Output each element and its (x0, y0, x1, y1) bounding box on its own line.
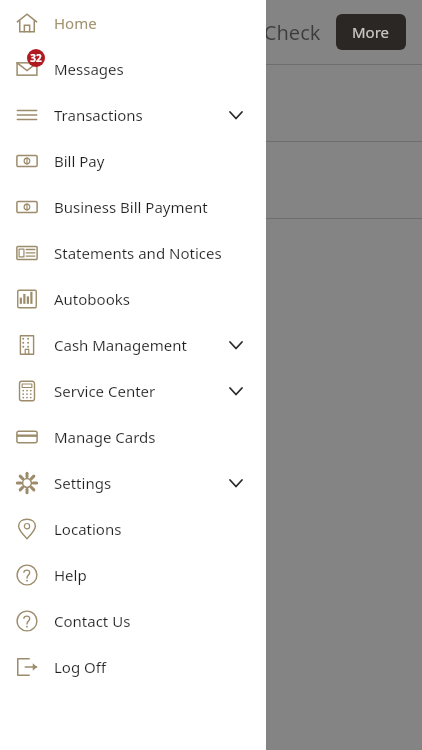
button[interactable]: Settings (0, 460, 266, 506)
staticText: Statements and Notices (54, 243, 266, 263)
staticText: Messages (54, 59, 266, 79)
staticText: Log Off (54, 657, 266, 677)
button[interactable] (0, 65, 422, 141)
button[interactable]: Autobooks (0, 276, 266, 322)
button[interactable]: Help (0, 552, 266, 598)
button[interactable]: Log Off (0, 644, 266, 690)
other: Settings (16, 472, 38, 494)
staticText: Locations (54, 519, 266, 539)
staticText: Settings (54, 473, 224, 493)
button[interactable] (0, 142, 422, 218)
other: Help (16, 564, 38, 586)
other: Help (16, 610, 38, 632)
other: Log Off (16, 656, 38, 678)
staticText: 32 (30, 51, 42, 65)
other: Bill Pay (16, 150, 38, 172)
other: Service Center (16, 380, 38, 402)
other: Manage Cards (16, 426, 38, 448)
staticText: Business Bill Payment (54, 197, 266, 217)
staticText: More (352, 22, 390, 42)
other: Messages (16, 58, 38, 80)
staticText: Cash Management (54, 335, 224, 355)
other: Bill Pay (16, 196, 38, 218)
staticText: Transactions (54, 105, 224, 125)
staticText: Autobooks (54, 289, 266, 309)
button[interactable]: Home (0, 0, 266, 46)
other: Autobooks (16, 288, 38, 310)
other: Cash Management (16, 334, 38, 356)
button[interactable]: Manage Cards (0, 414, 266, 460)
button[interactable]: Messages (0, 46, 266, 92)
button[interactable]: Bill Pay (0, 184, 266, 230)
button[interactable]: Transactions (0, 92, 266, 138)
button[interactable]: Cash Management (0, 322, 266, 368)
staticText: Service Center (54, 381, 224, 401)
other: Transactions (16, 104, 38, 126)
staticText: Home (54, 13, 266, 33)
staticText: Deposit a Check (170, 19, 321, 46)
button[interactable]: Clear (8, 236, 91, 282)
button[interactable]: Statements and Notices (0, 230, 266, 276)
staticText: Clear (30, 248, 69, 270)
other: Locations (16, 518, 38, 540)
staticText: Manage Cards (54, 427, 266, 447)
button[interactable]: Help (0, 598, 266, 644)
other: Statements and Notices (16, 242, 38, 264)
button[interactable]: More (336, 14, 406, 50)
button[interactable]: Service Center (0, 368, 266, 414)
other: Home (16, 12, 38, 34)
staticText: Bill Pay (54, 151, 266, 171)
staticText: Contact Us (54, 611, 266, 631)
button[interactable]: Locations (0, 506, 266, 552)
staticText: Help (54, 565, 266, 585)
button[interactable]: Bill Pay (0, 138, 266, 184)
